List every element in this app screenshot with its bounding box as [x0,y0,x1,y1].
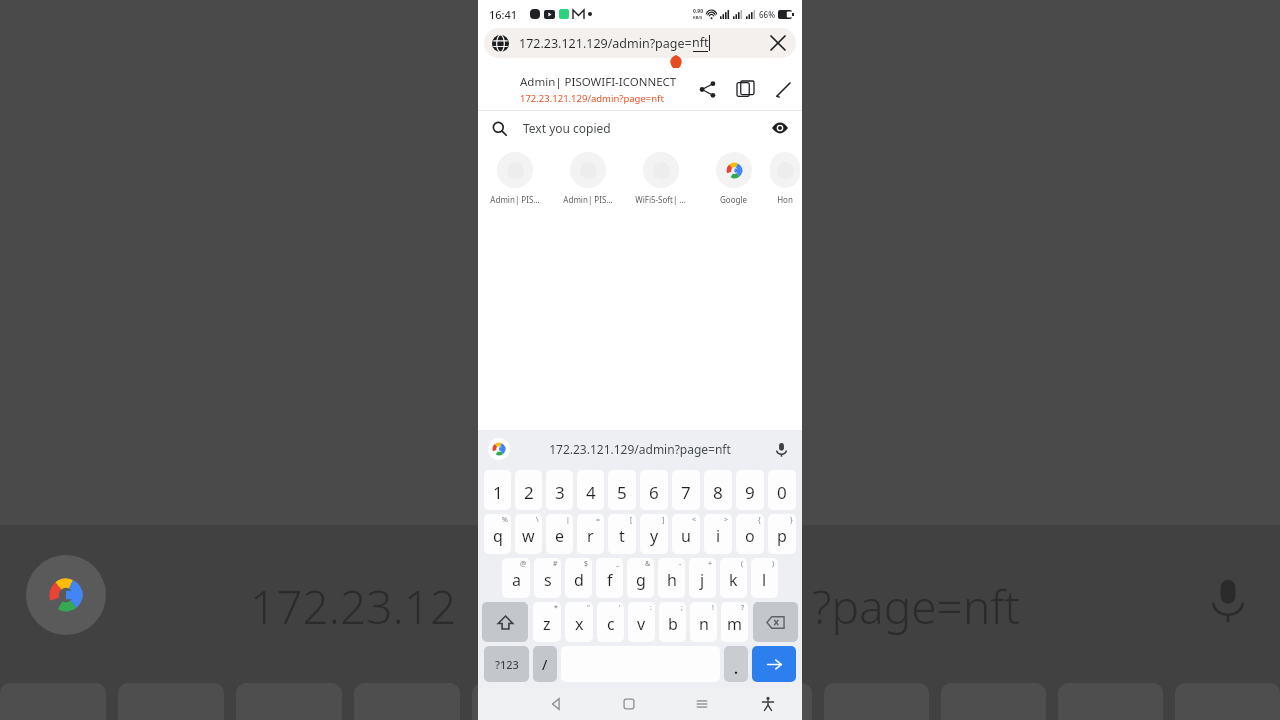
staticText: 5 [617,481,627,504]
button[interactable]: j [689,558,716,598]
staticText: _ [616,559,620,569]
button[interactable]: 7 [672,470,700,510]
staticText: g [636,569,646,591]
staticText: Google [720,194,747,205]
staticText: Admin| PIS… [490,194,540,205]
button[interactable]: 1 [484,470,511,510]
button[interactable]: Shift [482,602,528,642]
staticText: ) [772,559,775,569]
button[interactable]: Go [752,646,796,682]
staticText: % [502,515,508,525]
staticText: Text you copied [523,120,772,136]
staticText: ; [681,603,683,613]
button[interactable]: Copy [732,76,758,102]
button[interactable]: Home [614,689,644,719]
button[interactable]: Edit [770,76,796,102]
staticText: } [790,515,793,525]
staticText: ( [741,559,744,569]
button[interactable]: . [724,646,748,682]
button[interactable]: Share [694,76,720,102]
button[interactable]: 6 [640,470,668,510]
button[interactable]: t [608,514,636,554]
staticText: f [607,569,613,591]
staticText: KB/S [693,15,703,20]
button[interactable]: Voice input [770,438,792,460]
button[interactable]: f [596,558,623,598]
button[interactable]: i [704,514,732,554]
staticText: 6 [649,481,659,504]
staticText: Admin| PIS… [563,194,613,205]
staticText: v [637,613,646,635]
button[interactable]: q [484,514,511,554]
button[interactable]: Back [541,689,571,719]
staticText: 172.23.121.129/admin?page=nft [520,92,664,105]
button[interactable]: 8 [704,470,732,510]
button[interactable]: s [534,558,561,598]
button[interactable]: Accessibility [753,689,783,719]
button[interactable]: d [565,558,592,598]
staticText: [ [630,515,633,525]
button[interactable]: b [659,602,686,642]
button[interactable]: Admin| PISOWIFI-ICONNECT [478,68,802,110]
staticText: ?page=nft [812,575,1021,638]
button[interactable]: Backspace [753,602,798,642]
button[interactable]: Text you copied [478,111,802,145]
button[interactable]: z [533,602,561,642]
button[interactable]: Admin| PIS… [478,152,551,205]
button[interactable]: Google [697,152,770,205]
button[interactable]: u [672,514,700,554]
staticText: 2 [524,481,534,504]
button[interactable]: c [597,602,624,642]
staticText: < [692,515,697,525]
staticText: q [493,525,503,547]
button[interactable]: 4 [577,470,604,510]
button[interactable]: Recents [687,689,717,719]
button[interactable]: 5 [608,470,636,510]
button[interactable]: 0 [768,470,796,510]
staticText: " [587,603,590,613]
staticText: 172.23.12 [250,575,457,638]
staticText: y [650,525,659,547]
staticText: h [667,569,677,591]
staticText: m [727,613,742,635]
button[interactable]: o [736,514,764,554]
button[interactable]: m [721,602,748,642]
button[interactable]: 172.23.121.129/admin?page= [484,28,796,58]
button[interactable]: / [533,646,557,682]
button[interactable]: l [751,558,778,598]
button[interactable]: n [690,602,717,642]
staticText: 0.90 [693,8,703,15]
staticText: { [758,515,761,525]
button[interactable]: h [658,558,685,598]
button[interactable]: Admin| PIS… [551,152,624,205]
staticText: i [716,525,721,547]
button[interactable]: w [515,514,542,554]
button[interactable]: r [577,514,604,554]
staticText: Admin| PISOWIFI-ICONNECT [520,74,677,90]
button[interactable]: ?123 [484,646,529,682]
staticText: c [607,613,615,635]
button[interactable]: WiFi5-Soft| … [624,152,697,205]
button[interactable]: x [565,602,593,642]
button[interactable]: p [768,514,796,554]
button[interactable]: 2 [515,470,542,510]
button[interactable]: y [640,514,668,554]
staticText: k [729,569,738,591]
button[interactable]: v [628,602,655,642]
button[interactable]: Hon [770,152,800,205]
staticText: 0 [777,481,787,504]
button[interactable]: a [502,558,530,598]
staticText: 16:41 [489,7,518,22]
button[interactable]: Clear [768,33,788,53]
staticText: + [708,559,713,569]
button[interactable]: 3 [546,470,573,510]
button[interactable]: 9 [736,470,764,510]
staticText: l [762,569,767,591]
staticText: ?123 [495,657,519,672]
staticText: d [574,569,584,591]
button[interactable]: g [627,558,654,598]
button[interactable]: e [546,514,573,554]
button[interactable]: k [720,558,747,598]
button[interactable]: Google [488,438,510,460]
